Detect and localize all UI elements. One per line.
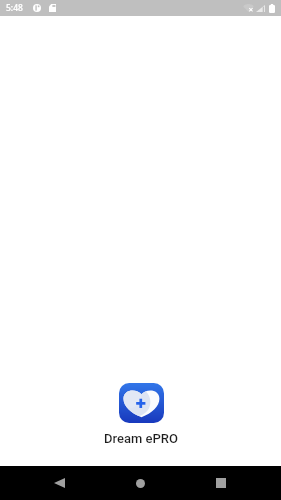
button[interactable]: Home bbox=[119, 466, 161, 500]
button[interactable]: Recent apps bbox=[200, 466, 242, 500]
staticText: 5:48 bbox=[6, 2, 23, 14]
staticText: Dream ePRO bbox=[104, 431, 178, 446]
button[interactable]: Back bbox=[38, 466, 80, 500]
button[interactable]: Dream ePRO app icon bbox=[119, 383, 164, 423]
